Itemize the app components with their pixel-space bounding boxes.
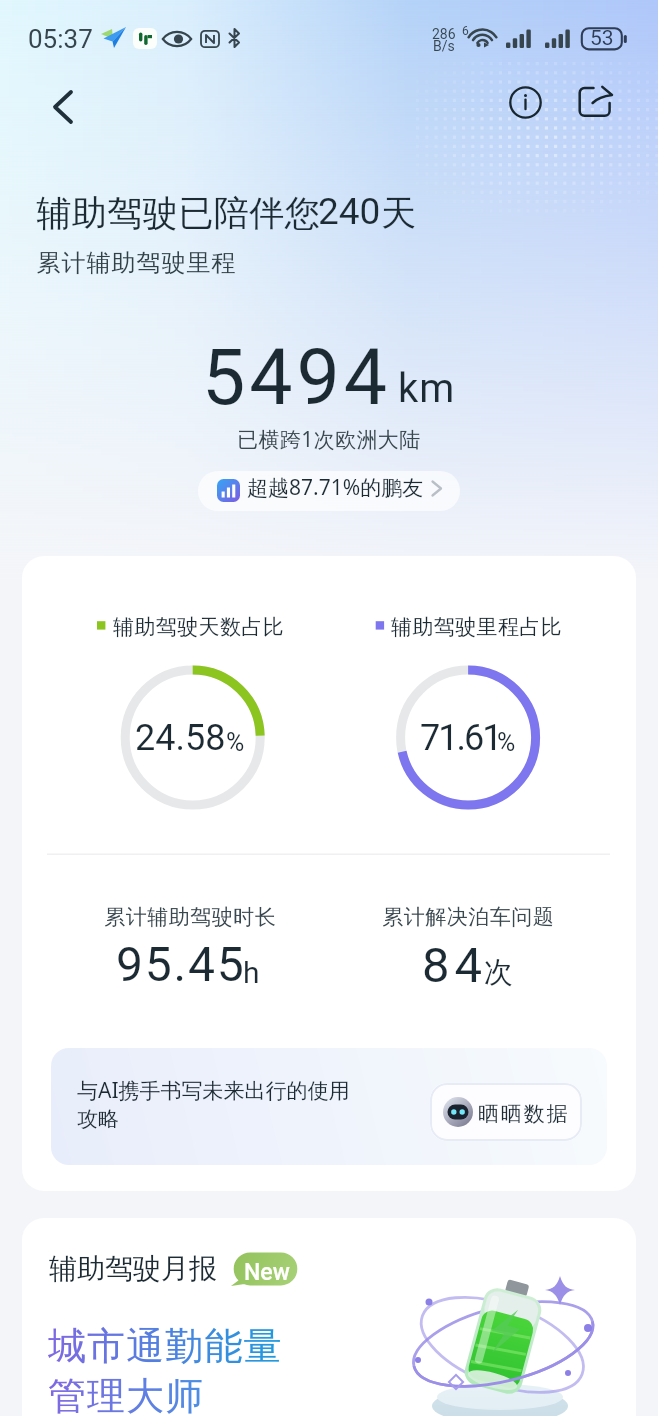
staticText: 已横跨1次欧洲大陆: [237, 425, 421, 454]
staticText: 次: [484, 954, 513, 991]
staticText: 辅助驾驶天数占比: [113, 614, 285, 640]
staticText: 286: [432, 26, 456, 42]
staticText: 24.58: [135, 717, 226, 759]
button[interactable]: 超越87.71%的鹏友: [198, 471, 460, 511]
staticText: 天: [381, 191, 416, 235]
button[interactable]: 晒晒数据: [430, 1083, 582, 1141]
staticText: 累计解决泊车问题: [382, 904, 554, 930]
staticText: 与AI携手书写未来出行的使用: [77, 1076, 350, 1105]
staticText: 05:37: [28, 24, 93, 54]
staticText: 84: [422, 937, 488, 994]
staticText: 辅助驾驶里程占比: [391, 614, 563, 640]
staticText: 超越87.71%的鹏友: [247, 473, 424, 502]
button[interactable]: Information: [503, 80, 547, 124]
staticText: 53: [590, 26, 614, 51]
button[interactable]: 辅助驾驶月报: [22, 1218, 636, 1416]
staticText: 城市通勤能量: [48, 1322, 283, 1370]
staticText: 累计辅助驾驶里程: [36, 248, 236, 278]
staticText: %: [497, 728, 516, 757]
staticText: 71.61: [420, 717, 501, 759]
staticText: 累计辅助驾驶时长: [104, 904, 276, 930]
button[interactable]: Back: [41, 85, 85, 129]
staticText: 240: [318, 190, 381, 233]
staticText: 辅助驾驶已陪伴您: [36, 191, 320, 235]
staticText: New: [244, 1259, 290, 1286]
staticText: 攻略: [77, 1106, 119, 1132]
staticText: 95.45: [116, 936, 246, 992]
staticText: km: [398, 365, 456, 412]
staticText: B/s: [433, 38, 455, 54]
staticText: 辅助驾驶月报: [49, 1251, 217, 1286]
staticText: 晒晒数据: [478, 1101, 570, 1127]
staticText: 管理大师: [48, 1372, 205, 1416]
staticText: %: [226, 728, 245, 757]
staticText: 5494: [202, 333, 392, 423]
staticText: h: [243, 955, 260, 990]
staticText: 6: [462, 24, 469, 38]
button[interactable]: Share: [571, 78, 615, 122]
